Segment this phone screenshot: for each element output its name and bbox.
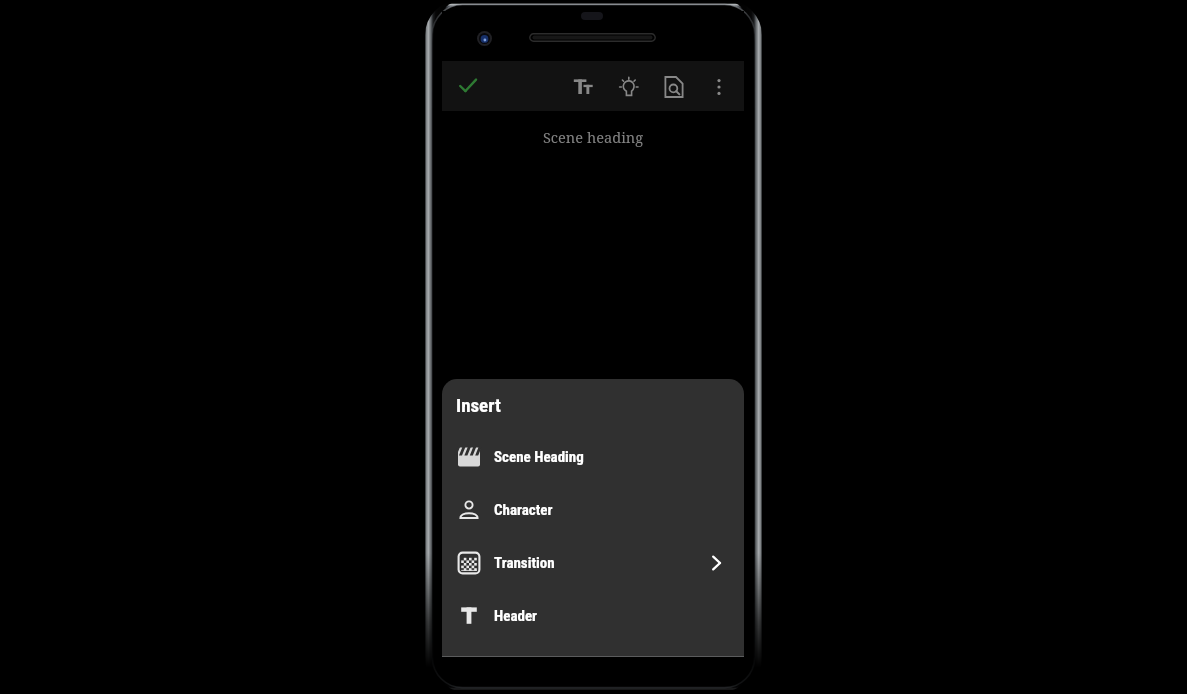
staticText: Scene Heading	[494, 448, 584, 466]
button[interactable]: More options	[696, 64, 741, 109]
button[interactable]: Done	[446, 63, 492, 109]
staticText: Header	[494, 607, 538, 625]
button[interactable]: Scene Heading	[442, 430, 744, 483]
staticText: Scene heading	[442, 127, 744, 147]
staticText: Insert	[456, 394, 501, 416]
button[interactable]: Header	[442, 589, 744, 642]
button[interactable]: Format text	[561, 64, 606, 109]
button[interactable]: Find in document	[651, 64, 696, 109]
button[interactable]: Suggestions	[606, 64, 651, 109]
button[interactable]: Character	[442, 483, 744, 536]
staticText: Character	[494, 501, 553, 519]
button[interactable]: Transition	[442, 536, 744, 589]
staticText: Transition	[494, 554, 555, 572]
